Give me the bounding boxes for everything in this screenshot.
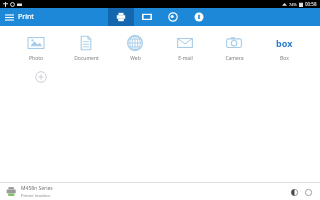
button[interactable]: Print — [108, 8, 134, 26]
staticText: box — [276, 37, 293, 49]
button[interactable]: Document — [64, 32, 108, 64]
button[interactable]: Add source — [34, 70, 48, 84]
button[interactable]: box — [262, 32, 306, 64]
button[interactable]: Open navigation menu — [0, 8, 18, 26]
staticText: 00:58 — [305, 1, 317, 7]
button[interactable]: Info — [186, 8, 212, 26]
button[interactable]: Copy — [160, 8, 186, 26]
button[interactable]: E-mail — [163, 32, 207, 64]
button[interactable]: Web — [113, 32, 157, 64]
button[interactable]: Paper level — [302, 186, 314, 198]
staticText: E-mail — [178, 55, 193, 62]
staticText: Box — [280, 55, 289, 62]
button[interactable]: Scan — [134, 8, 160, 26]
staticText: Camera — [225, 55, 244, 62]
button[interactable]: Camera — [212, 32, 256, 64]
staticText: Web — [130, 55, 141, 62]
staticText: Photo — [29, 55, 43, 62]
button[interactable]: Ink level — [288, 186, 300, 198]
button[interactable]: M458n Series — [0, 183, 320, 200]
button[interactable]: Photo — [14, 32, 58, 64]
staticText: Document — [74, 55, 99, 62]
staticText: Printer location — [21, 193, 50, 198]
staticText: 74% — [289, 2, 297, 7]
staticText: Print — [18, 12, 34, 22]
staticText: M458n Series — [21, 185, 53, 192]
